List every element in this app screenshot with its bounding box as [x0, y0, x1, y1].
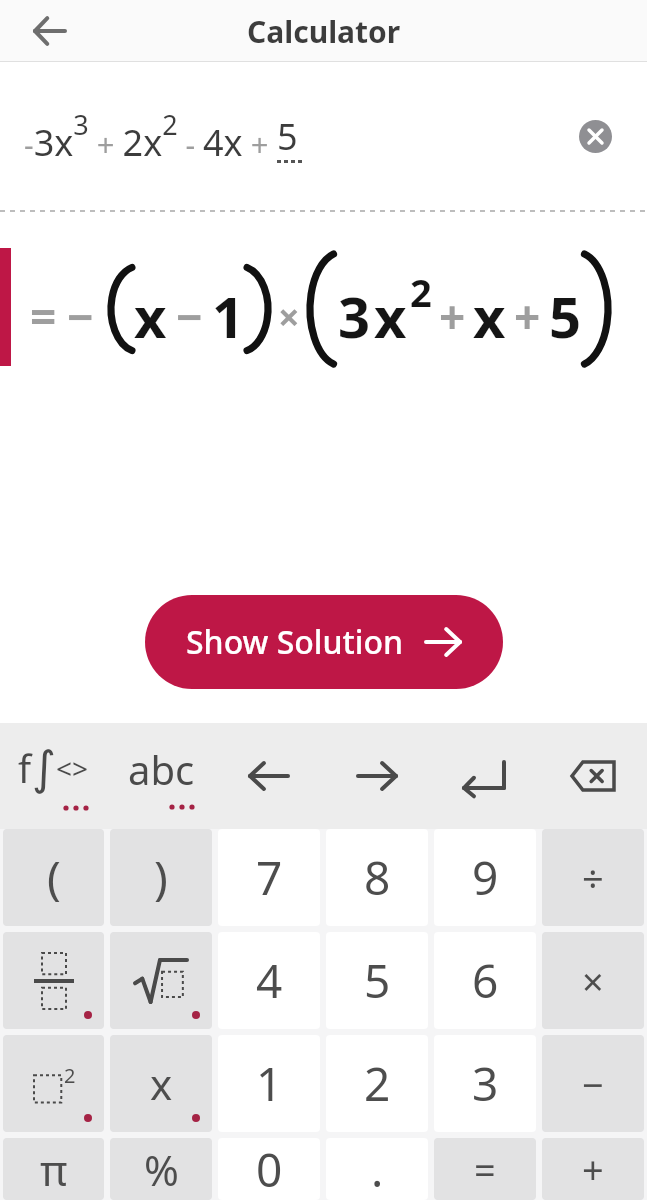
staticText: +: [514, 285, 541, 348]
staticText: +: [439, 285, 466, 348]
staticText: x: [374, 278, 407, 354]
staticText: −: [582, 1058, 604, 1110]
staticText: −: [176, 285, 203, 348]
button[interactable]: 6: [434, 932, 536, 1029]
staticText: x: [150, 1055, 173, 1112]
button[interactable]: f: [0, 723, 107, 829]
staticText: -3x3 + 2x2 - 4x +: [24, 106, 277, 166]
staticText: ∫: [32, 741, 56, 795]
button[interactable]: ÷: [542, 829, 644, 926]
staticText: Show Solution: [186, 620, 404, 664]
staticText: ×: [582, 955, 604, 1007]
staticText: %: [144, 1141, 179, 1198]
button[interactable]: 4: [218, 932, 320, 1029]
button[interactable]: =: [434, 1138, 536, 1200]
staticText: 7: [256, 846, 283, 909]
button[interactable]: 1: [218, 1035, 320, 1132]
button[interactable]: x: [110, 1035, 212, 1132]
button[interactable]: 0: [218, 1138, 320, 1200]
staticText: x: [134, 278, 167, 354]
staticText: 9: [472, 846, 499, 909]
button[interactable]: %: [110, 1138, 212, 1200]
button[interactable]: ): [110, 829, 212, 926]
staticText: .: [371, 1138, 384, 1200]
button[interactable]: 2: [3, 1035, 104, 1132]
staticText: <>: [56, 749, 89, 787]
staticText: x: [473, 278, 506, 354]
staticText: =: [30, 285, 57, 348]
button[interactable]: .: [326, 1138, 428, 1200]
button[interactable]: 5: [326, 932, 428, 1029]
button[interactable]: 7: [218, 829, 320, 926]
button[interactable]: [3, 932, 104, 1029]
staticText: 4: [256, 949, 283, 1012]
button[interactable]: 9: [434, 829, 536, 926]
button[interactable]: 2: [326, 1035, 428, 1132]
staticText: 5: [277, 112, 298, 161]
staticText: ÷: [582, 852, 604, 904]
button[interactable]: π: [3, 1138, 104, 1200]
staticText: 5: [549, 278, 582, 354]
staticText: 6: [472, 949, 499, 1012]
staticText: 8: [364, 846, 391, 909]
staticText: 5: [364, 949, 391, 1012]
staticText: 3: [338, 278, 371, 354]
staticText: ×: [278, 290, 300, 342]
staticText: 1: [212, 278, 245, 354]
button[interactable]: 8: [326, 829, 428, 926]
staticText: π: [40, 1141, 68, 1198]
staticText: Calculator: [247, 11, 401, 52]
button[interactable]: (: [3, 829, 104, 926]
staticText: 2: [410, 266, 432, 318]
staticText: abc: [128, 742, 195, 796]
button[interactable]: [431, 723, 539, 829]
button[interactable]: [28, 9, 72, 53]
button[interactable]: [215, 723, 323, 829]
staticText: (: [47, 846, 61, 909]
staticText: 2: [64, 1062, 76, 1089]
button[interactable]: [110, 932, 212, 1029]
staticText: f: [18, 742, 32, 794]
button[interactable]: [323, 723, 431, 829]
button[interactable]: [579, 120, 612, 153]
button[interactable]: [539, 723, 647, 829]
staticText: ): [154, 846, 168, 909]
button[interactable]: abc: [107, 723, 215, 829]
button[interactable]: ×: [542, 932, 644, 1029]
staticText: +: [582, 1143, 604, 1195]
staticText: 2: [364, 1052, 391, 1115]
staticText: 1: [256, 1052, 283, 1115]
button[interactable]: +: [542, 1138, 644, 1200]
button[interactable]: Show Solution: [145, 595, 503, 689]
staticText: −: [67, 285, 94, 348]
staticText: 3: [472, 1052, 499, 1115]
staticText: =: [474, 1143, 496, 1195]
button[interactable]: −: [542, 1035, 644, 1132]
button[interactable]: 3: [434, 1035, 536, 1132]
staticText: 0: [256, 1138, 283, 1200]
